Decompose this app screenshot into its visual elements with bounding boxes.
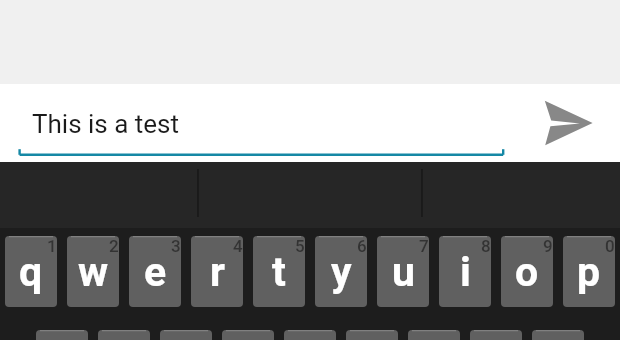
button[interactable]: p: [563, 236, 615, 307]
button[interactable]: f: [222, 330, 274, 340]
button[interactable]: t: [253, 236, 305, 307]
staticText: u: [392, 248, 415, 296]
staticText: w: [78, 248, 109, 296]
staticText: 9: [543, 236, 553, 256]
button[interactable]: h: [346, 330, 398, 340]
button[interactable]: w: [67, 236, 119, 307]
staticText: e: [144, 248, 167, 296]
staticText: 0: [605, 236, 615, 256]
staticText: 5: [295, 236, 305, 256]
button[interactable]: This is a test: [10, 94, 522, 154]
staticText: y: [331, 248, 352, 296]
staticText: 4: [233, 236, 243, 256]
staticText: This is a test: [32, 109, 180, 139]
staticText: 7: [419, 236, 429, 256]
button[interactable]: k: [470, 330, 522, 340]
button[interactable]: s: [98, 330, 150, 340]
staticText: q: [19, 248, 43, 296]
button[interactable]: d: [160, 330, 212, 340]
button[interactable]: i: [439, 236, 491, 307]
staticText: i: [460, 248, 471, 296]
staticText: 3: [171, 236, 181, 256]
button[interactable]: o: [501, 236, 553, 307]
staticText: p: [577, 248, 601, 296]
staticText: t: [272, 248, 286, 296]
button[interactable]: g: [284, 330, 336, 340]
staticText: r: [210, 248, 225, 296]
staticText: 1: [47, 236, 57, 256]
staticText: 8: [481, 236, 491, 256]
button[interactable]: y: [315, 236, 367, 307]
staticText: o: [515, 248, 539, 296]
button[interactable]: l: [532, 330, 584, 340]
button[interactable]: j: [408, 330, 460, 340]
button[interactable]: r: [191, 236, 243, 307]
button[interactable]: u: [377, 236, 429, 307]
button[interactable]: e: [129, 236, 181, 307]
staticText: 6: [357, 236, 367, 256]
button[interactable]: Send: [540, 96, 598, 150]
button[interactable]: a: [36, 330, 88, 340]
button[interactable]: q: [5, 236, 57, 307]
staticText: 2: [109, 236, 119, 256]
